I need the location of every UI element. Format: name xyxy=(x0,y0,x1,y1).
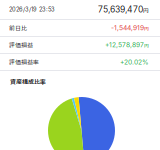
staticText: 75,639,470円 xyxy=(98,4,149,15)
button[interactable]: 2026/3/19 23:53 xyxy=(0,0,160,20)
staticText: 評価損益 xyxy=(9,41,33,49)
button[interactable]: 前日比 xyxy=(0,20,160,37)
staticText: 2026/3/19 23:53 xyxy=(9,6,55,13)
staticText: +12,578,897円 xyxy=(105,41,149,49)
button[interactable]: 評価損益率 xyxy=(0,54,160,71)
staticText: 前日比 xyxy=(9,24,27,32)
staticText: 評価損益率 xyxy=(9,58,39,66)
staticText: +20.02% xyxy=(120,58,149,66)
staticText: 資産構成比率 xyxy=(10,77,46,86)
button[interactable]: 評価損益 xyxy=(0,37,160,54)
staticText: -1,544,919円 xyxy=(111,24,149,32)
